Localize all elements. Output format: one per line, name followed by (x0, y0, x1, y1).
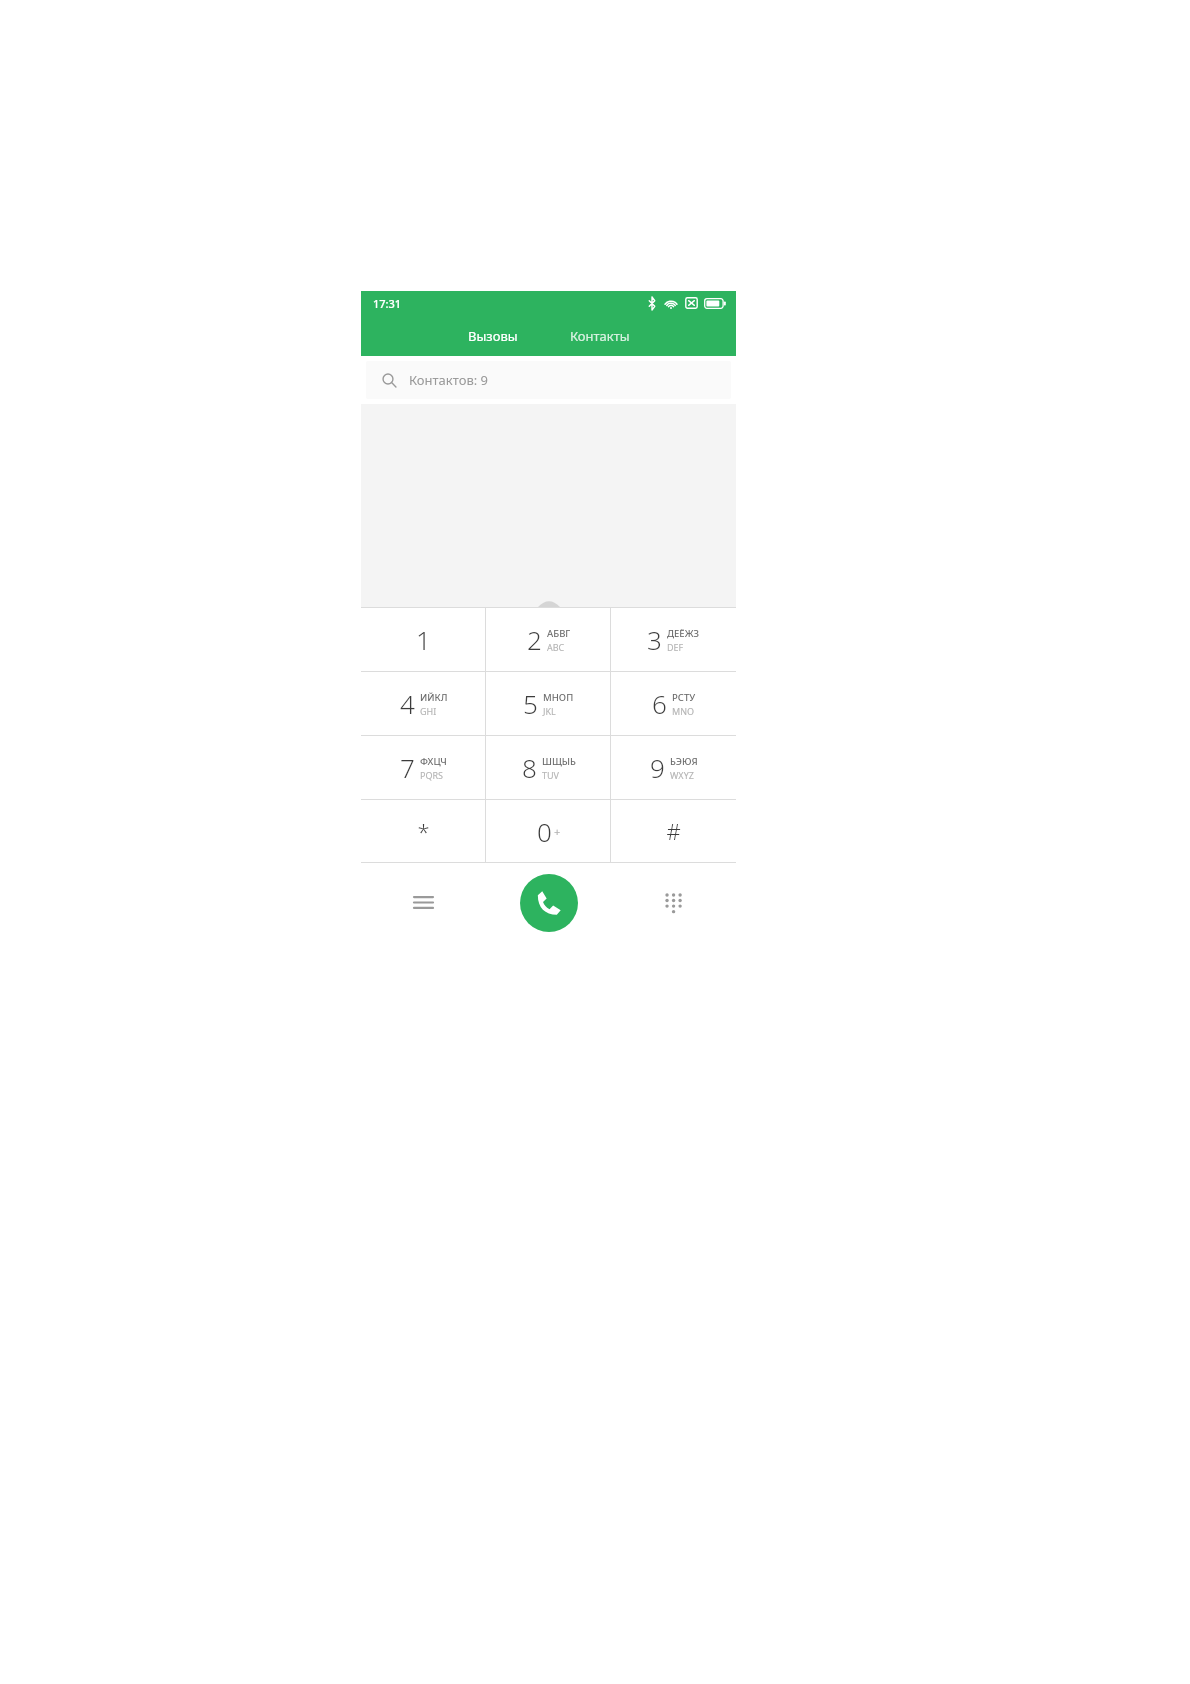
staticText: DEF (667, 641, 684, 653)
staticText: GHI (420, 705, 437, 717)
staticText: ФХЦЧ (420, 755, 447, 768)
button[interactable]: Вызовы (452, 319, 534, 353)
staticText: 0 (537, 814, 552, 849)
staticText: + (554, 824, 561, 839)
staticText: ЬЭЮЯ (670, 755, 698, 768)
button[interactable]: 5 (486, 671, 611, 735)
button[interactable]: Контакты (554, 319, 646, 353)
button[interactable]: Dialpad (611, 864, 736, 941)
button[interactable]: Контактов: 9 (366, 361, 731, 399)
button[interactable]: 2 (486, 607, 611, 671)
staticText: РСТУ (672, 691, 696, 704)
staticText: 3 (647, 622, 662, 657)
staticText: WXYZ (670, 769, 694, 781)
staticText: 6 (652, 686, 667, 721)
staticText: JKL (543, 705, 556, 717)
staticText: MNO (672, 705, 695, 717)
staticText: # (666, 816, 681, 846)
staticText: МНОП (543, 691, 574, 704)
staticText: 8 (522, 750, 537, 785)
button[interactable]: 9 (611, 735, 736, 799)
staticText: PQRS (420, 769, 444, 781)
button[interactable]: 4 (361, 671, 486, 735)
button[interactable]: 3 (611, 607, 736, 671)
staticText: Контактов: 9 (409, 371, 489, 389)
button[interactable]: 8 (486, 735, 611, 799)
staticText: АБВГ (547, 627, 571, 640)
staticText: ДЕЁЖЗ (667, 627, 700, 640)
button[interactable]: Call (520, 874, 578, 932)
button[interactable]: # (611, 799, 736, 863)
button[interactable]: Menu (361, 864, 486, 941)
staticText: 9 (650, 750, 665, 785)
staticText: 4 (400, 686, 415, 721)
staticText: 17:31 (373, 296, 402, 311)
staticText: TUV (542, 769, 559, 781)
staticText: Контакты (570, 327, 630, 345)
staticText: * (417, 816, 430, 846)
staticText: 7 (400, 750, 415, 785)
button[interactable]: 0 (486, 799, 611, 863)
staticText: ABC (547, 641, 565, 653)
staticText: 5 (523, 686, 538, 721)
button[interactable]: 6 (611, 671, 736, 735)
button[interactable]: * (361, 799, 486, 863)
staticText: ШЩЫЬ (542, 755, 576, 768)
button[interactable]: 1 (361, 607, 486, 671)
staticText: Вызовы (468, 327, 518, 345)
staticText: 1 (416, 622, 431, 657)
staticText: ИЙКЛ (420, 691, 448, 704)
button[interactable]: 7 (361, 735, 486, 799)
staticText: 2 (527, 622, 542, 657)
